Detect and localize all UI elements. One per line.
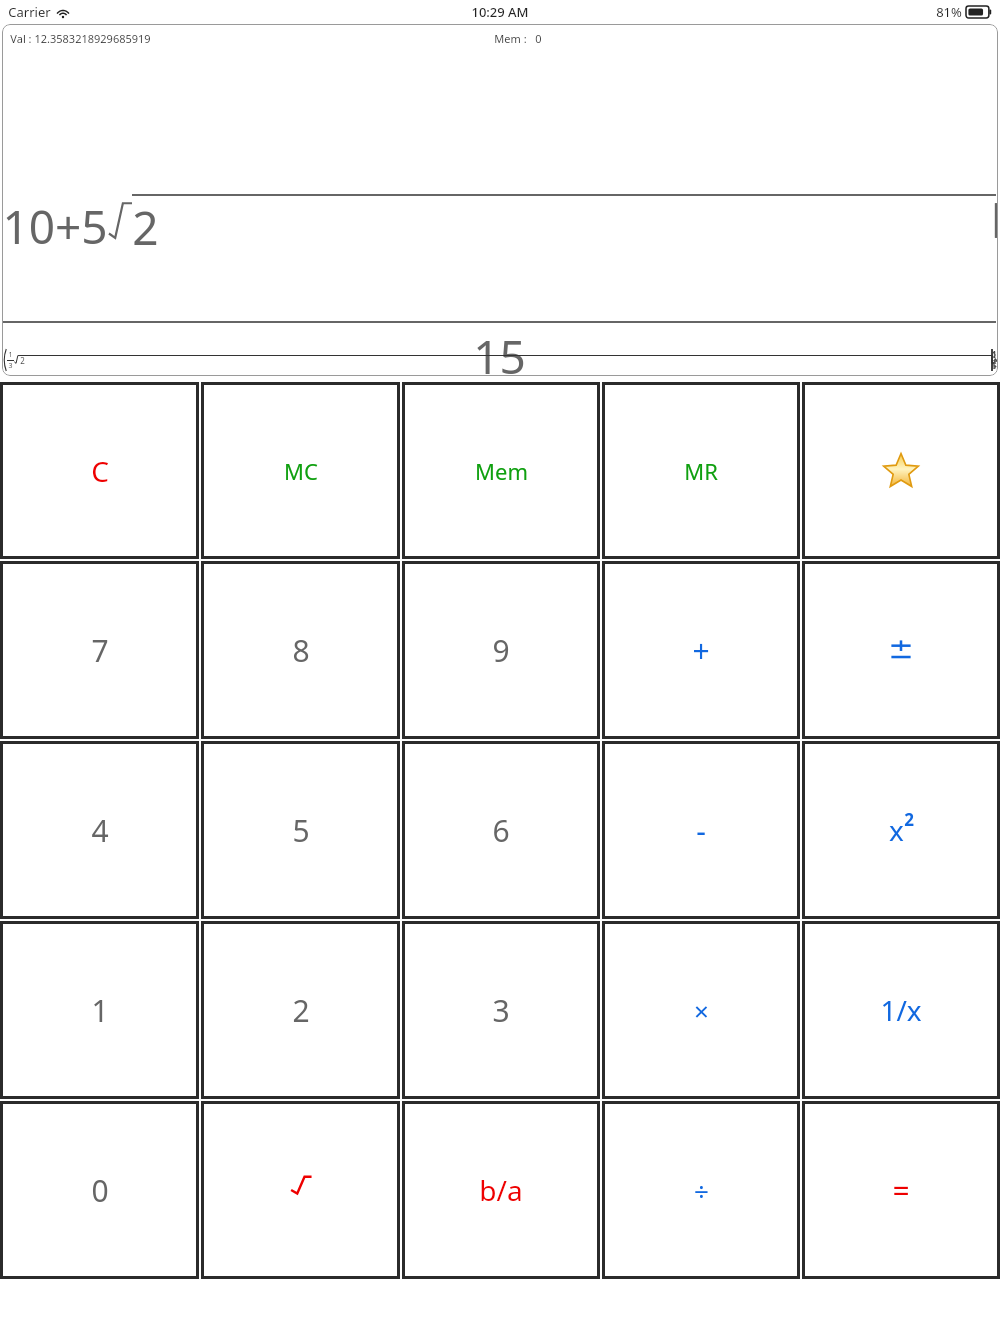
staticText: 10:29 AM xyxy=(471,3,529,21)
button[interactable]: 3 xyxy=(402,921,600,1099)
staticText: b/a xyxy=(479,1171,523,1209)
staticText: 1/x xyxy=(880,991,922,1029)
staticText: Mem xyxy=(475,456,528,486)
button[interactable]: 0 xyxy=(0,1101,199,1279)
button[interactable]: 2 xyxy=(201,921,400,1099)
button[interactable]: 1 xyxy=(0,921,199,1099)
button[interactable]: 4 xyxy=(0,741,199,919)
staticText: 3 xyxy=(8,361,13,371)
staticText: + xyxy=(692,630,710,671)
staticText: 15 xyxy=(473,325,526,376)
button[interactable]: MC xyxy=(201,382,400,559)
staticText: 2 xyxy=(904,808,914,831)
staticText: 2 xyxy=(132,196,159,259)
staticText: 2 xyxy=(20,355,25,366)
button[interactable]: ÷ xyxy=(602,1101,800,1279)
button[interactable]: + xyxy=(602,561,800,739)
button[interactable]: Square root xyxy=(201,1101,400,1279)
staticText: 3 xyxy=(492,990,510,1031)
button[interactable]: 7 xyxy=(0,561,199,739)
staticText: 2 xyxy=(292,990,310,1031)
button[interactable]: 9 xyxy=(402,561,600,739)
staticText: 5 xyxy=(292,810,310,851)
staticText: Val : 12.3583218929685919 xyxy=(10,31,151,46)
staticText: 1 xyxy=(8,350,13,360)
staticText: 81% xyxy=(936,3,962,21)
staticText: Carrier xyxy=(8,3,51,21)
staticText: MR xyxy=(684,456,718,486)
button[interactable]: 6 xyxy=(402,741,600,919)
button[interactable]: x squared xyxy=(802,741,1000,919)
staticText: - xyxy=(696,810,706,851)
staticText: ÷ xyxy=(694,1173,709,1208)
staticText: 9 xyxy=(492,630,510,671)
staticText: 10+5 xyxy=(2,195,108,258)
staticText: MC xyxy=(284,456,318,486)
button[interactable]: Favorite xyxy=(802,382,1000,559)
staticText: 4 xyxy=(91,810,109,851)
button[interactable]: Mem xyxy=(402,382,600,559)
button[interactable]: 5 xyxy=(201,741,400,919)
button[interactable]: - xyxy=(602,741,800,919)
button[interactable]: 1/x xyxy=(802,921,1000,1099)
staticText: = xyxy=(892,1170,910,1211)
button[interactable]: = xyxy=(802,1101,1000,1279)
staticText: Mem : xyxy=(494,31,527,46)
button[interactable]: C xyxy=(0,382,199,559)
staticText: 0 xyxy=(535,31,542,46)
button[interactable]: MR xyxy=(602,382,800,559)
staticText: 6 xyxy=(492,810,510,851)
button[interactable]: b/a xyxy=(402,1101,600,1279)
staticText: 7 xyxy=(91,630,109,671)
button[interactable]: 8 xyxy=(201,561,400,739)
staticText: 8 xyxy=(292,630,310,671)
staticText: C xyxy=(91,452,109,490)
staticText: x xyxy=(889,811,904,849)
staticText: × xyxy=(694,993,709,1028)
staticText: 0 xyxy=(91,1170,109,1211)
button[interactable]: × xyxy=(602,921,800,1099)
button[interactable]: Plus minus xyxy=(802,561,1000,739)
staticText: 1 xyxy=(91,990,109,1031)
